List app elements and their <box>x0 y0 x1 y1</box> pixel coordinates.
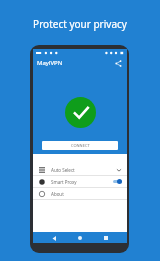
staticText: CONNECT <box>71 143 90 148</box>
button[interactable]: About <box>33 188 127 199</box>
button[interactable]: Recents <box>101 233 111 243</box>
staticText: Smart Proxy <box>51 179 77 185</box>
button[interactable]: Smart Proxy <box>33 176 127 187</box>
button[interactable]: Share <box>114 59 123 68</box>
button[interactable]: Back <box>49 233 59 243</box>
staticText: Auto Select <box>51 167 75 173</box>
staticText: MaylVPN <box>37 59 63 67</box>
button[interactable]: CONNECT <box>42 141 118 150</box>
button[interactable]: Home <box>75 233 85 243</box>
staticText: About <box>51 191 64 197</box>
button[interactable]: Auto Select <box>33 164 127 175</box>
staticText: Protect your privacy <box>0 17 160 31</box>
